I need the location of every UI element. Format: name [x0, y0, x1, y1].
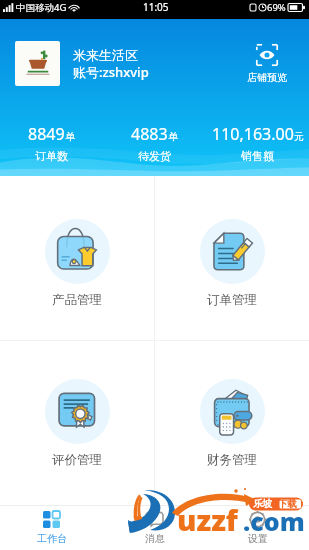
staticText: 米来生活区	[73, 47, 138, 63]
staticText: .com	[243, 504, 305, 538]
button[interactable]: 评价管理	[0, 341, 154, 505]
staticText: 4883	[131, 123, 168, 145]
button[interactable]: 消息	[103, 506, 206, 550]
staticText: 订单数	[35, 149, 68, 163]
staticText: 69%	[267, 1, 286, 14]
staticText: 账号:zshxvip	[73, 63, 149, 81]
staticText: 销售额	[241, 149, 274, 163]
other: 消息	[146, 511, 163, 528]
staticText: 11:05	[143, 0, 169, 14]
staticText: 订单管理	[207, 292, 257, 308]
button[interactable]: 工作台	[0, 506, 103, 550]
staticText: 110,163.00	[212, 123, 294, 145]
other: 工作台	[43, 511, 60, 528]
staticText: 单	[65, 130, 75, 143]
other: 店铺预览	[256, 44, 278, 66]
button[interactable]: 订单管理	[155, 176, 309, 340]
button[interactable]: 设置	[206, 506, 309, 550]
staticText: 工作台	[37, 532, 67, 545]
staticText: 元	[294, 130, 304, 143]
staticText: 消息	[145, 532, 165, 545]
button[interactable]: 店铺预览	[239, 40, 295, 88]
other: 设置	[249, 511, 266, 528]
staticText: 产品管理	[52, 292, 102, 308]
staticText: 乐坡	[253, 498, 272, 510]
staticText: 设置	[248, 532, 268, 545]
staticText: 中国移动4G	[16, 1, 67, 14]
button[interactable]: 财务管理	[155, 341, 309, 505]
staticText: 评价管理	[52, 452, 102, 468]
staticText: uzzf	[177, 500, 238, 539]
button[interactable]: 产品管理	[0, 176, 154, 340]
staticText: 店铺预览	[247, 71, 287, 84]
staticText: 财务管理	[207, 452, 257, 468]
staticText: 8849	[28, 123, 65, 145]
staticText: 下载	[278, 498, 297, 510]
staticText: 单	[168, 130, 178, 143]
staticText: 待发货	[138, 149, 171, 163]
